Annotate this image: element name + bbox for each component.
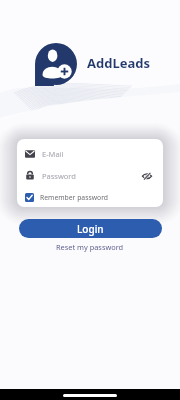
button[interactable]: Login [19, 219, 162, 238]
button[interactable]: Show password [142, 171, 152, 181]
button[interactable]: Reset my password [56, 242, 124, 252]
button[interactable]: E-Mail [17, 143, 163, 165]
staticText: E-Mail [42, 149, 64, 159]
staticText: Login [77, 222, 104, 236]
button[interactable]: Remember password [17, 187, 163, 207]
staticText: AddLeads [87, 54, 150, 72]
staticText: Remember password [40, 193, 109, 202]
button[interactable]: Password [17, 165, 163, 187]
staticText: Password [42, 171, 76, 181]
